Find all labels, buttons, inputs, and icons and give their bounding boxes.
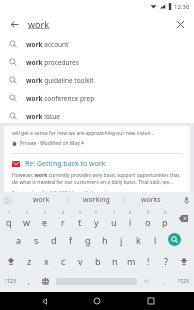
staticText: work guideline toolkit — [26, 76, 94, 85]
staticText: However, work currently provides very ba… — [12, 172, 182, 186]
staticText: c — [61, 255, 66, 267]
staticText: Received on April 3, 2016 from Rebecca J… — [12, 190, 119, 192]
button[interactable]: 5 — [71, 208, 88, 229]
button[interactable]: ! — [140, 250, 157, 271]
button[interactable]: ? — [157, 250, 174, 271]
button[interactable]: Back — [34, 292, 54, 310]
button[interactable]: More suggestions — [0, 192, 14, 208]
staticText: h — [102, 234, 108, 246]
staticText: g — [85, 234, 91, 246]
staticText: ? — [164, 255, 168, 267]
staticText: 8 — [129, 210, 132, 215]
staticText: works — [141, 195, 161, 205]
staticText: o — [145, 216, 151, 228]
button[interactable]: 7 — [105, 208, 122, 229]
staticText: 1 — [8, 210, 11, 215]
button[interactable]: Shift — [174, 250, 194, 271]
button[interactable]: x — [38, 250, 55, 271]
staticText: 5 — [79, 210, 82, 215]
button[interactable]: work guideline toolkit — [0, 71, 194, 89]
button[interactable]: Home — [87, 292, 107, 310]
staticText: z — [27, 255, 32, 267]
button[interactable]: 0 — [156, 208, 173, 229]
staticText: working — [83, 195, 110, 205]
staticText: 12:30 — [174, 3, 190, 11]
staticText: 4 — [62, 210, 65, 215]
button[interactable]: Voice input — [178, 192, 194, 208]
button[interactable]: j — [113, 229, 130, 250]
button[interactable]: Space — [54, 271, 138, 292]
button[interactable]: l — [147, 229, 164, 250]
button[interactable]: n — [106, 250, 123, 271]
button[interactable]: m — [123, 250, 140, 271]
staticText: will get a sense for how we are approach… — [12, 130, 155, 137]
staticText: work issue — [26, 112, 60, 121]
button[interactable]: d — [45, 229, 62, 250]
button[interactable]: >| — [138, 271, 155, 292]
button[interactable]: work — [14, 192, 68, 208]
button[interactable]: working — [69, 192, 123, 208]
staticText: . — [163, 277, 165, 287]
button[interactable]: Backspace — [173, 208, 194, 229]
staticText: l — [154, 234, 157, 246]
staticText: f — [69, 234, 73, 246]
button[interactable]: 1 — [0, 208, 18, 229]
button[interactable]: 4 — [54, 208, 71, 229]
button[interactable]: k — [130, 229, 147, 250]
button[interactable]: work procedures — [0, 53, 194, 71]
button[interactable]: s — [28, 229, 45, 250]
button[interactable]: g — [79, 229, 96, 250]
staticText: t — [78, 216, 82, 228]
button[interactable]: ?123 — [0, 271, 21, 292]
button[interactable]: work account — [0, 35, 194, 53]
button[interactable]: . — [155, 271, 172, 292]
staticText: ! — [147, 255, 150, 267]
button[interactable]: 6 — [88, 208, 105, 229]
staticText: x — [44, 255, 49, 267]
button[interactable]: Recent apps — [141, 292, 161, 310]
button[interactable]: Re: Getting back to work — [4, 159, 190, 192]
button[interactable]: Change language — [37, 271, 54, 292]
staticText: p — [162, 216, 168, 228]
button[interactable]: Back — [6, 16, 22, 32]
button[interactable]: Clear — [172, 16, 188, 32]
button[interactable]: Search — [164, 229, 185, 250]
staticText: 2 — [26, 210, 29, 215]
button[interactable]: ?123 — [172, 271, 194, 292]
staticText: e — [42, 216, 48, 228]
staticText: a — [16, 234, 22, 246]
button[interactable]: 9 — [139, 208, 156, 229]
staticText: 9 — [147, 210, 150, 215]
staticText: q — [6, 216, 12, 228]
button[interactable]: 2 — [18, 208, 36, 229]
staticText: y — [94, 216, 99, 228]
button[interactable]: works — [124, 192, 178, 208]
button[interactable]: work issue — [0, 107, 194, 125]
button[interactable]: a — [10, 229, 28, 250]
button[interactable]: z — [21, 250, 38, 271]
staticText: b — [95, 255, 101, 267]
button[interactable]: v — [72, 250, 89, 271]
button[interactable]: c — [55, 250, 72, 271]
staticText: m — [127, 255, 136, 267]
staticText: r — [61, 216, 65, 228]
button[interactable]: , — [21, 271, 37, 292]
button[interactable]: Shift — [0, 250, 21, 271]
button[interactable]: f — [62, 229, 79, 250]
staticText: , — [28, 277, 30, 287]
button[interactable]: b — [89, 250, 106, 271]
staticText: 0 — [164, 210, 167, 215]
button[interactable]: work conference prep — [0, 89, 194, 107]
staticText: work — [28, 18, 172, 30]
staticText: 7 — [113, 210, 116, 215]
button[interactable]: 3 — [36, 208, 54, 229]
staticText: Re: Getting back to work — [25, 159, 106, 169]
staticText: j — [120, 234, 123, 246]
staticText: v — [78, 255, 83, 267]
button[interactable]: will get a sense for how we are approach… — [4, 126, 190, 147]
staticText: i — [129, 216, 132, 228]
button[interactable]: 8 — [122, 208, 139, 229]
button[interactable]: h — [96, 229, 113, 250]
staticText: n — [112, 255, 118, 267]
staticText: d — [51, 234, 57, 246]
